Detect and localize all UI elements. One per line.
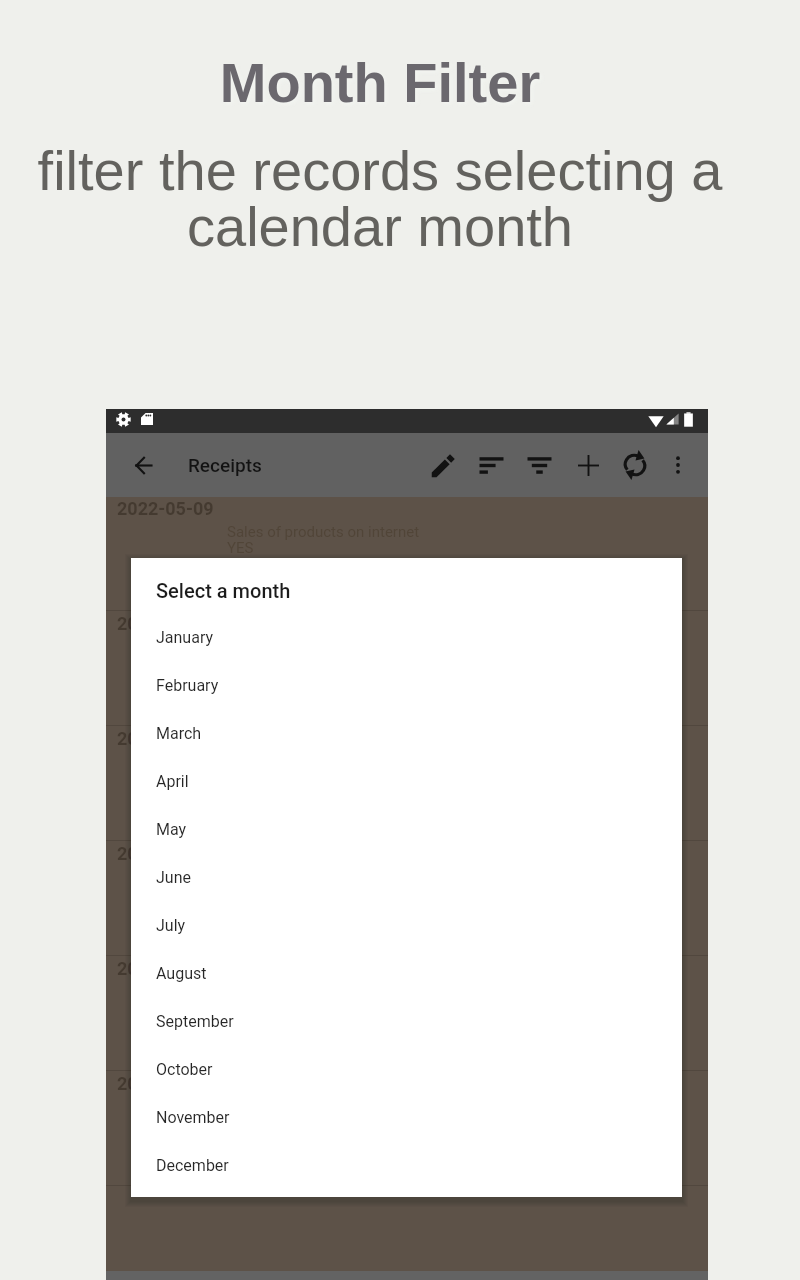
- staticText: Receipts: [188, 454, 262, 476]
- staticText: October: [156, 1060, 213, 1079]
- staticText: December: [156, 1156, 229, 1175]
- button[interactable]: Edit: [419, 441, 467, 489]
- staticText: May: [156, 820, 187, 839]
- button[interactable]: More options: [654, 441, 702, 489]
- button[interactable]: Sync: [611, 441, 659, 489]
- staticText: 2022-05-09: [117, 728, 214, 749]
- button[interactable]: Add: [564, 441, 612, 489]
- button[interactable]: April: [131, 759, 682, 807]
- button[interactable]: Filter: [515, 441, 563, 489]
- staticText: filter the records selecting a calendar …: [0, 139, 760, 258]
- staticText: July: [156, 916, 186, 935]
- button[interactable]: August: [131, 951, 682, 999]
- button[interactable]: March: [131, 711, 682, 759]
- staticText: 2022-05-09: [117, 958, 214, 979]
- staticText: June: [156, 868, 191, 887]
- staticText: August: [156, 964, 207, 983]
- staticText: 2022-05-09: [117, 843, 214, 864]
- button[interactable]: July: [131, 903, 682, 951]
- staticText: YES: [227, 539, 254, 557]
- button[interactable]: Back: [119, 441, 167, 489]
- button[interactable]: November: [131, 1095, 682, 1143]
- staticText: February: [156, 676, 219, 695]
- staticText: Sales of products on internet: [227, 523, 420, 541]
- staticText: January: [156, 628, 214, 647]
- button[interactable]: December: [131, 1143, 682, 1191]
- button[interactable]: October: [131, 1047, 682, 1095]
- button[interactable]: June: [131, 855, 682, 903]
- staticText: 2022-05-09: [117, 1073, 214, 1094]
- button[interactable]: May: [131, 807, 682, 855]
- staticText: April: [156, 772, 189, 791]
- staticText: Month Filter: [0, 51, 760, 114]
- button[interactable]: January: [131, 615, 682, 663]
- staticText: November: [156, 1108, 230, 1127]
- button[interactable]: September: [131, 999, 682, 1047]
- staticText: Select a month: [156, 579, 291, 602]
- button[interactable]: February: [131, 663, 682, 711]
- staticText: 2022-05-09: [117, 498, 214, 519]
- staticText: March: [156, 724, 202, 743]
- button[interactable]: Sort: [467, 441, 515, 489]
- staticText: 2022-05-09: [117, 613, 214, 634]
- staticText: September: [156, 1012, 234, 1031]
